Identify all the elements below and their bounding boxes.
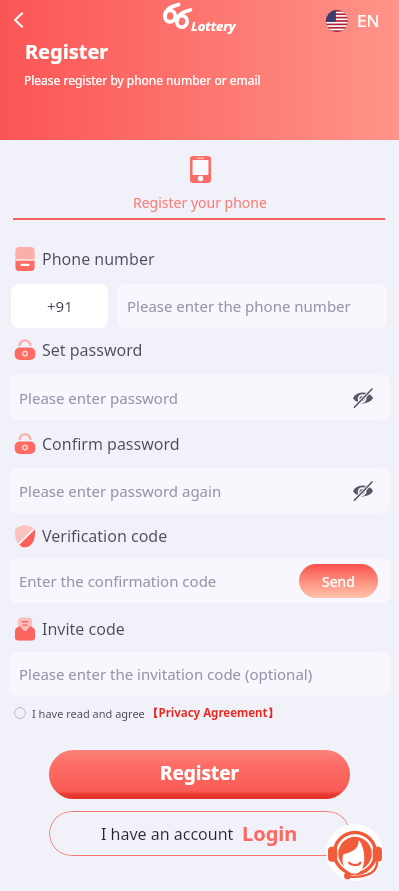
staticText: Phone number [42,248,155,270]
staticText: Please enter password [19,388,179,408]
staticText: Please register by phone number or email [24,72,261,88]
button[interactable]: +91 [11,284,108,328]
staticText: Please enter the phone number [127,296,351,316]
button[interactable]: Send [299,564,378,598]
button[interactable]: Register [49,750,350,799]
staticText: Lottery [191,17,236,35]
staticText: Invite code [42,618,125,640]
staticText: Set password [42,339,143,361]
staticText: I have an account [101,823,234,845]
button[interactable]: Back [5,6,33,34]
staticText: I have read and agree [32,706,145,721]
button[interactable]: Customer service [326,824,383,881]
staticText: EN [357,9,380,32]
staticText: Login [242,820,298,847]
button[interactable]: I have an account [49,811,350,856]
staticText: Confirm password [42,433,180,455]
staticText: Register your phone [133,193,267,212]
button[interactable]: Show password [350,385,376,411]
button[interactable]: Show password [350,478,376,504]
button[interactable]: Please enter password again [9,468,390,513]
button[interactable]: Agree to privacy agreement [14,707,26,719]
staticText: Verification code [42,525,168,547]
staticText: Please enter the invitation code (option… [19,664,313,684]
staticText: Send [322,572,355,591]
button[interactable]: Language EN [326,9,380,32]
staticText: Enter the confirmation code [19,571,217,591]
staticText: Register [160,760,240,786]
button[interactable]: Please enter password [9,375,390,420]
staticText: Please enter password again [19,481,222,501]
button[interactable]: 【Privacy Agreement】 [147,705,280,721]
staticText: +91 [47,296,73,316]
button[interactable]: Register your phone [133,156,267,212]
staticText: Register [25,38,109,65]
button[interactable]: Please enter the phone number [117,284,387,328]
button[interactable]: Enter the confirmation code [9,558,390,603]
button[interactable]: Please enter the invitation code (option… [9,652,390,696]
